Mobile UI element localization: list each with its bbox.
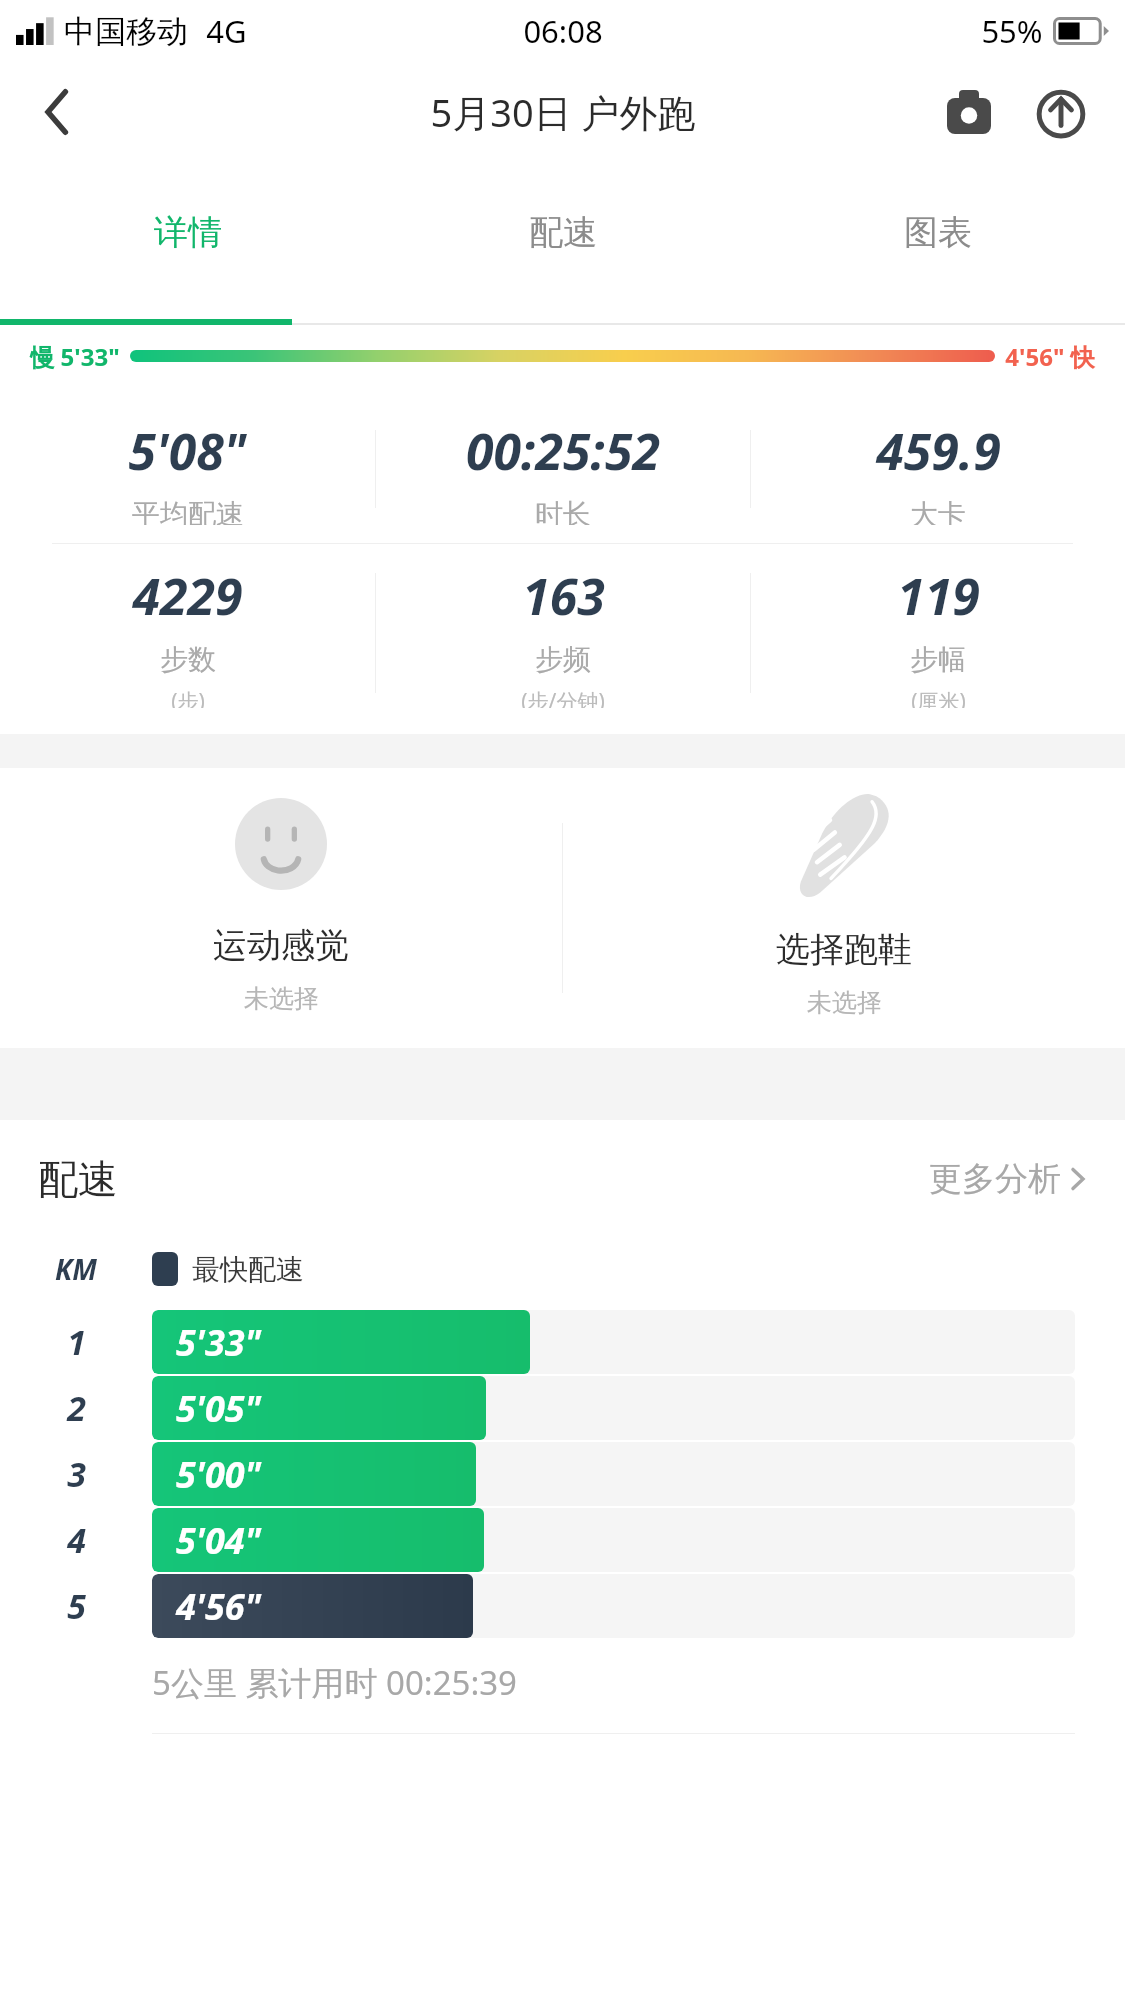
staticText: 步幅 xyxy=(910,642,966,677)
staticText: 5'00" xyxy=(176,1450,261,1499)
button[interactable]: 图表 xyxy=(750,162,1125,325)
staticText: 5'33" xyxy=(176,1318,261,1367)
staticText: 4229 xyxy=(132,562,243,630)
staticText: 5公里 累计用时 00:25:39 xyxy=(152,1660,517,1705)
staticText: 4'56" 快 xyxy=(1005,340,1095,373)
staticText: 步数 xyxy=(160,642,216,677)
staticText: 选择跑鞋 xyxy=(776,928,912,971)
staticText: 中国移动 xyxy=(64,12,188,51)
staticText: 06:08 xyxy=(523,10,603,52)
staticText: 5月30日 户外跑 xyxy=(430,86,696,138)
button[interactable]: 详情 xyxy=(0,162,375,325)
staticText: 4G xyxy=(206,10,247,52)
staticText: 未选择 xyxy=(807,987,882,1018)
button[interactable]: 4 xyxy=(38,1508,1075,1572)
staticText: 119 xyxy=(897,562,980,630)
staticText: 5'04" xyxy=(176,1516,261,1565)
staticText: 步频 xyxy=(535,642,591,677)
staticText: 00:25:52 xyxy=(466,417,660,485)
staticText: 配速 xyxy=(529,211,597,254)
button[interactable]: 更多分析 xyxy=(929,1158,1087,1200)
staticText: 2 xyxy=(67,1385,86,1431)
staticText: 图表 xyxy=(904,211,972,254)
staticText: 慢 5'33" xyxy=(30,340,120,373)
staticText: 4'56" xyxy=(176,1582,261,1631)
staticText: (步) xyxy=(171,687,205,708)
staticText: 5'05" xyxy=(176,1384,261,1433)
staticText: 5'08" xyxy=(128,417,247,485)
staticText: 运动感觉 xyxy=(213,924,349,967)
staticText: 平均配速 xyxy=(132,497,244,525)
button[interactable]: Upload xyxy=(1023,74,1099,150)
button[interactable]: 运动感觉 xyxy=(0,768,562,1048)
button[interactable]: 2 xyxy=(38,1376,1075,1440)
staticText: 时长 xyxy=(535,497,591,525)
button[interactable]: Back xyxy=(22,77,92,147)
button[interactable]: Camera xyxy=(931,74,1007,150)
staticText: 4 xyxy=(67,1517,86,1563)
button[interactable]: 1 xyxy=(38,1310,1075,1374)
staticText: 5 xyxy=(67,1583,86,1629)
button[interactable]: 配速 xyxy=(375,162,750,325)
staticText: 更多分析 xyxy=(929,1158,1061,1200)
staticText: 1 xyxy=(67,1319,86,1365)
staticText: 大卡 xyxy=(910,497,966,525)
staticText: 3 xyxy=(67,1451,86,1497)
staticText: (厘米) xyxy=(911,687,966,708)
staticText: 163 xyxy=(522,562,605,630)
staticText: 55% xyxy=(981,10,1043,52)
button[interactable]: 5 xyxy=(38,1574,1075,1638)
button[interactable]: 3 xyxy=(38,1442,1075,1506)
staticText: 详情 xyxy=(154,211,222,254)
staticText: KM xyxy=(55,1250,97,1288)
staticText: (步/分钟) xyxy=(521,687,605,708)
staticText: 未选择 xyxy=(244,983,319,1014)
staticText: 最快配速 xyxy=(192,1252,304,1287)
staticText: 配速 xyxy=(38,1154,118,1204)
button[interactable]: 选择跑鞋 xyxy=(563,768,1125,1048)
staticText: 459.9 xyxy=(876,417,1001,485)
